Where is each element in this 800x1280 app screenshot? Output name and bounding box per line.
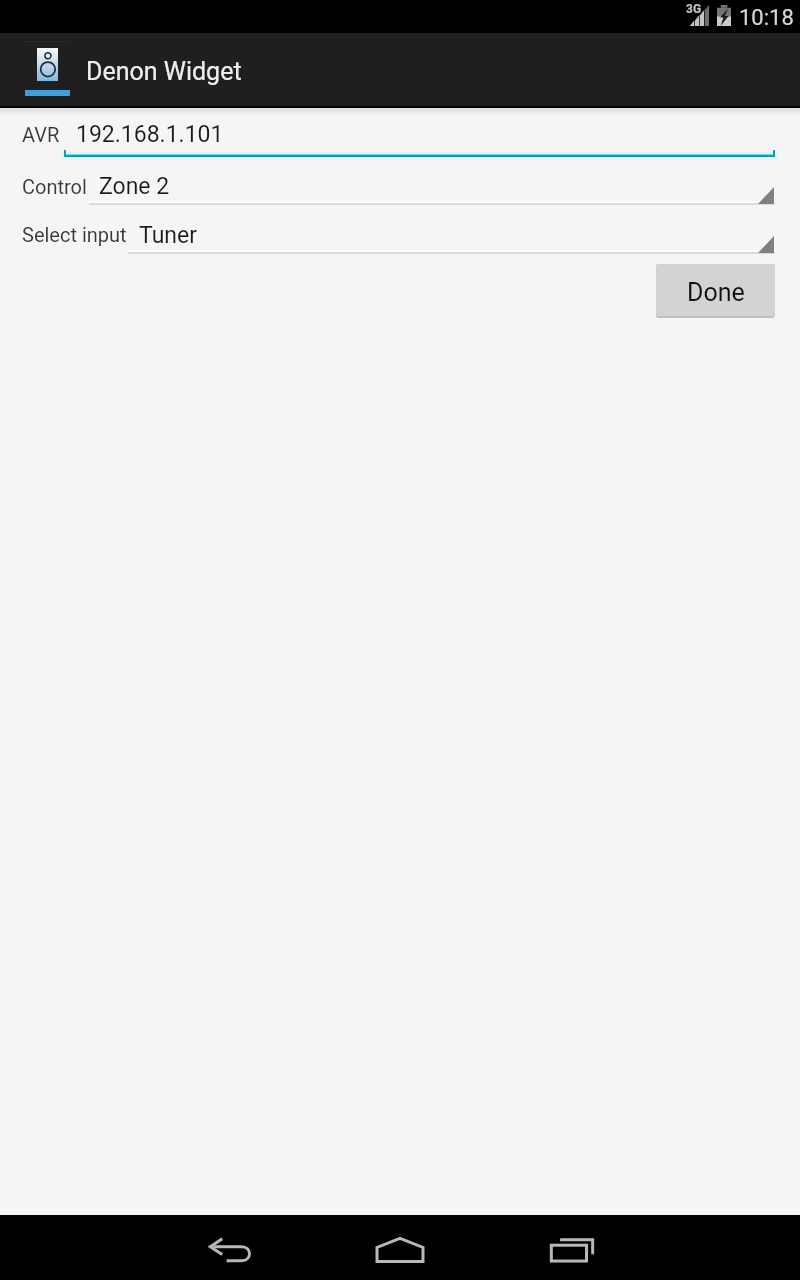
staticText: Control [22,175,87,198]
staticText: 192.168.1.101 [76,121,224,148]
staticText: AVR [22,123,60,146]
staticText: Zone 2 [99,173,170,200]
button[interactable]: Select input [0,211,800,256]
button[interactable]: Done [656,264,775,316]
button[interactable]: Denon Widget home [0,35,79,106]
staticText: Select input [22,223,127,246]
staticText: 3G [686,2,702,16]
button[interactable]: Home [345,1215,455,1280]
button[interactable]: Recent apps [515,1215,625,1280]
staticText: Denon Widget [86,57,242,86]
staticText: 10:18 [739,5,794,31]
button[interactable]: Back [175,1215,285,1280]
button[interactable]: Control [0,162,800,207]
button[interactable]: AVR [0,112,800,159]
staticText: Done [687,278,745,307]
staticText: Tuner [139,222,198,249]
